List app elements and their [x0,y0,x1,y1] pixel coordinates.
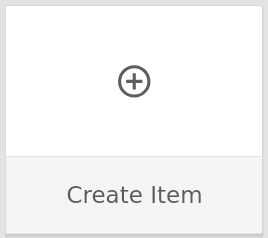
staticText: Create Item [66,182,203,209]
other: Add item [116,63,152,99]
button[interactable]: Add item [6,6,262,234]
